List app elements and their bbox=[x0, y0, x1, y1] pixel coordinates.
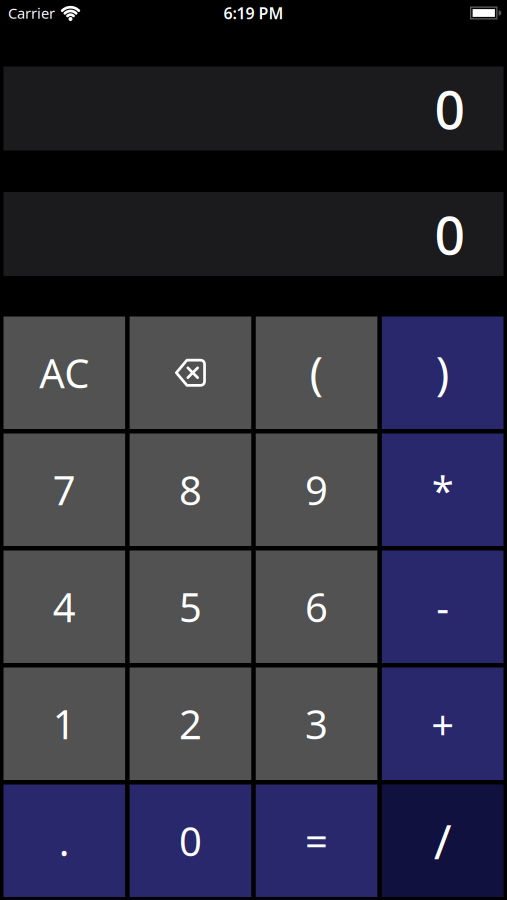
button[interactable]: / bbox=[382, 784, 503, 897]
staticText: = bbox=[305, 814, 328, 867]
button[interactable]: - bbox=[382, 550, 503, 663]
button[interactable]: 8 bbox=[130, 433, 251, 546]
button[interactable]: 4 bbox=[3, 550, 125, 663]
button[interactable]: + bbox=[382, 667, 503, 780]
button[interactable]: = bbox=[256, 784, 377, 897]
button[interactable]: 9 bbox=[256, 433, 377, 546]
staticText: 8 bbox=[179, 463, 202, 516]
button[interactable]: 5 bbox=[130, 550, 251, 663]
staticText: 2 bbox=[179, 697, 202, 750]
staticText: ) bbox=[436, 343, 450, 403]
button[interactable]: 6 bbox=[256, 550, 377, 663]
button[interactable]: ( bbox=[256, 316, 377, 429]
staticText: 0 bbox=[434, 199, 465, 269]
staticText: * bbox=[432, 463, 454, 516]
button[interactable]: 1 bbox=[3, 667, 125, 780]
staticText: . bbox=[59, 814, 70, 867]
staticText: 5 bbox=[179, 580, 202, 633]
staticText: 9 bbox=[305, 463, 328, 516]
button[interactable]: 7 bbox=[3, 433, 125, 546]
button[interactable]: 3 bbox=[256, 667, 377, 780]
button[interactable]: 2 bbox=[130, 667, 251, 780]
staticText: 7 bbox=[53, 463, 76, 516]
staticText: 1 bbox=[53, 697, 76, 750]
staticText: 6:19 PM bbox=[223, 2, 283, 24]
staticText: AC bbox=[39, 346, 89, 399]
staticText: 3 bbox=[305, 697, 328, 750]
staticText: - bbox=[436, 580, 449, 633]
staticText: 0 bbox=[179, 814, 202, 867]
staticText: / bbox=[434, 809, 452, 873]
button[interactable]: 0 bbox=[130, 784, 251, 897]
staticText: ( bbox=[310, 343, 324, 403]
staticText: 0 bbox=[434, 73, 465, 144]
staticText: 6 bbox=[305, 580, 328, 633]
staticText: + bbox=[431, 697, 454, 750]
staticText: 4 bbox=[53, 580, 76, 633]
button[interactable]: * bbox=[382, 433, 503, 546]
button[interactable]: AC bbox=[3, 316, 125, 429]
button[interactable]: . bbox=[3, 784, 125, 897]
button[interactable]: ) bbox=[382, 316, 503, 429]
staticText: Carrier bbox=[8, 3, 55, 23]
button[interactable]: Delete bbox=[130, 316, 251, 429]
